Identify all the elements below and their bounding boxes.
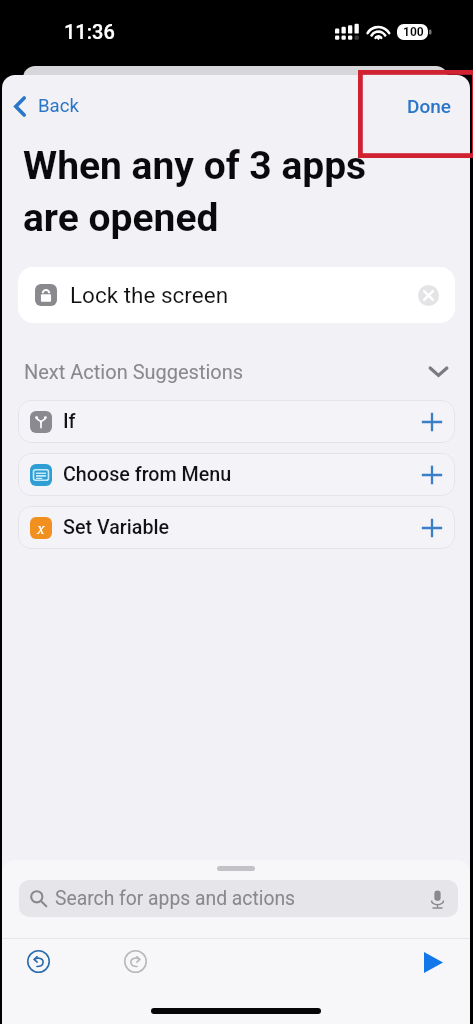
staticText: If: [63, 410, 76, 433]
staticText: When any of 3 apps are opened: [23, 143, 393, 241]
button[interactable]: Next Action Suggestions: [2, 355, 470, 387]
button[interactable]: Back: [2, 89, 93, 123]
button[interactable]: Search for apps and actions: [19, 880, 458, 917]
staticText: Set Variable: [63, 516, 170, 539]
staticText: Choose from Menu: [63, 463, 232, 486]
button[interactable]: Done: [389, 88, 470, 124]
button[interactable]: Add Set Variable: [417, 513, 447, 543]
button[interactable]: Remove action: [415, 282, 441, 308]
button[interactable]: Add If: [417, 407, 447, 437]
staticText: Next Action Suggestions: [24, 360, 244, 383]
button[interactable]: If: [18, 400, 455, 443]
staticText: Done: [407, 95, 451, 117]
button[interactable]: Add Choose from Menu: [417, 460, 447, 490]
button[interactable]: Run shortcut: [419, 948, 447, 976]
staticText: Search for apps and actions: [55, 887, 296, 910]
button[interactable]: Redo: [121, 947, 149, 975]
button[interactable]: Lock the screen: [18, 267, 455, 323]
staticText: x: [37, 519, 45, 538]
staticText: 100: [403, 25, 424, 39]
button[interactable]: Undo: [24, 947, 52, 975]
button[interactable]: Voice search: [420, 882, 454, 916]
staticText: Back: [38, 95, 79, 117]
button[interactable]: x: [18, 506, 455, 549]
button[interactable]: Choose from Menu: [18, 453, 455, 496]
staticText: Lock the screen: [70, 282, 229, 308]
staticText: 11:36: [64, 20, 115, 43]
